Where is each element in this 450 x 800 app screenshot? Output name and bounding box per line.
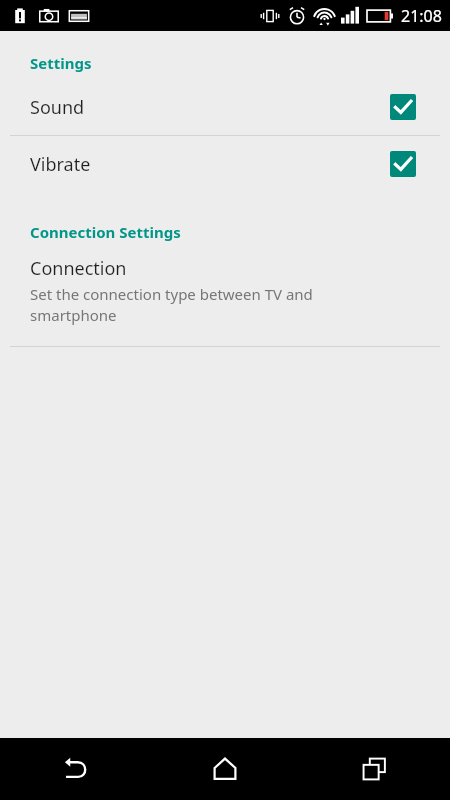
- staticText: Connection: [30, 256, 127, 281]
- button[interactable]: Connection: [0, 248, 450, 346]
- staticText: 21:08: [401, 5, 442, 27]
- button[interactable]: Sound enabled: [390, 94, 416, 120]
- button[interactable]: Home: [150, 738, 300, 800]
- button[interactable]: Vibrate: [0, 136, 450, 192]
- button[interactable]: Sound: [0, 79, 450, 135]
- staticText: Set the connection type between TV and s…: [30, 284, 313, 326]
- staticText: Sound: [30, 95, 390, 120]
- button[interactable]: Back: [0, 738, 150, 800]
- button[interactable]: Recent apps: [300, 738, 450, 800]
- button[interactable]: Vibrate enabled: [390, 151, 416, 177]
- staticText: Connection Settings: [30, 222, 181, 242]
- staticText: Vibrate: [30, 152, 390, 177]
- staticText: Settings: [30, 53, 92, 73]
